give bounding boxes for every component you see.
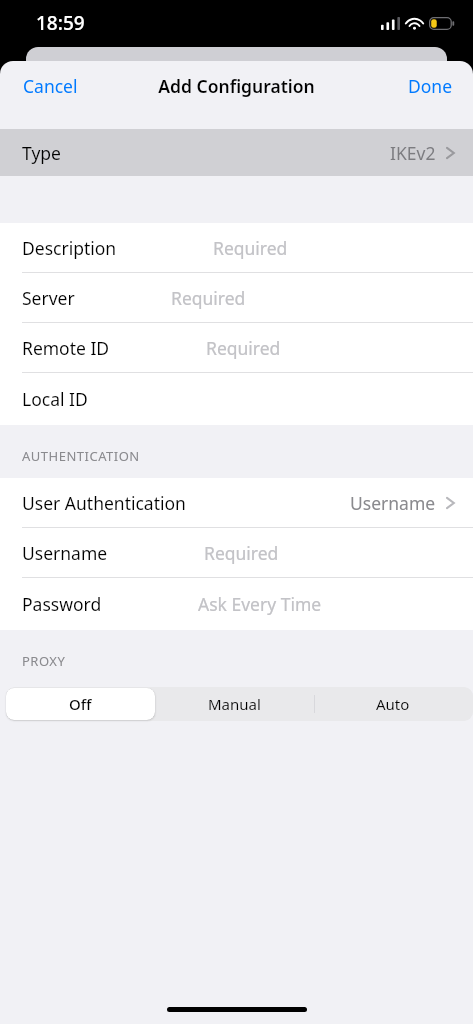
staticText: Local ID: [22, 387, 88, 411]
staticText: Description: [22, 236, 117, 260]
staticText: Required: [213, 236, 288, 260]
button[interactable]: Cancel: [0, 66, 90, 106]
button[interactable]: Remote ID: [0, 323, 473, 372]
button[interactable]: Type: [0, 129, 473, 176]
button[interactable]: Off: [6, 688, 155, 720]
staticText: AUTHENTICATION: [22, 447, 140, 465]
staticText: Add Configuration: [158, 74, 315, 98]
button[interactable]: Manual: [155, 687, 313, 721]
button[interactable]: Password: [0, 578, 473, 630]
staticText: Required: [206, 336, 281, 360]
button[interactable]: Username: [0, 528, 473, 577]
staticText: Done: [408, 74, 453, 98]
button[interactable]: Done: [396, 66, 473, 106]
button[interactable]: Server: [0, 273, 473, 322]
staticText: Auto: [376, 694, 410, 714]
staticText: Off: [69, 694, 92, 714]
staticText: Ask Every Time: [198, 592, 322, 616]
staticText: Type: [22, 141, 61, 165]
button[interactable]: User Authentication: [0, 478, 473, 527]
staticText: Cancel: [23, 74, 78, 98]
button[interactable]: Description: [0, 223, 473, 272]
staticText: Remote ID: [22, 336, 110, 360]
staticText: Required: [171, 286, 246, 310]
staticText: User Authentication: [22, 491, 186, 515]
staticText: Server: [22, 286, 75, 310]
staticText: 18:59: [36, 10, 85, 36]
staticText: PROXY: [22, 652, 66, 670]
button[interactable]: Auto: [313, 687, 473, 721]
staticText: Password: [22, 592, 102, 616]
button[interactable]: Local ID: [0, 373, 473, 425]
staticText: Username: [22, 541, 108, 565]
staticText: IKEv2: [390, 141, 436, 165]
staticText: Manual: [208, 694, 261, 714]
staticText: Required: [204, 541, 279, 565]
staticText: Username: [350, 491, 436, 515]
